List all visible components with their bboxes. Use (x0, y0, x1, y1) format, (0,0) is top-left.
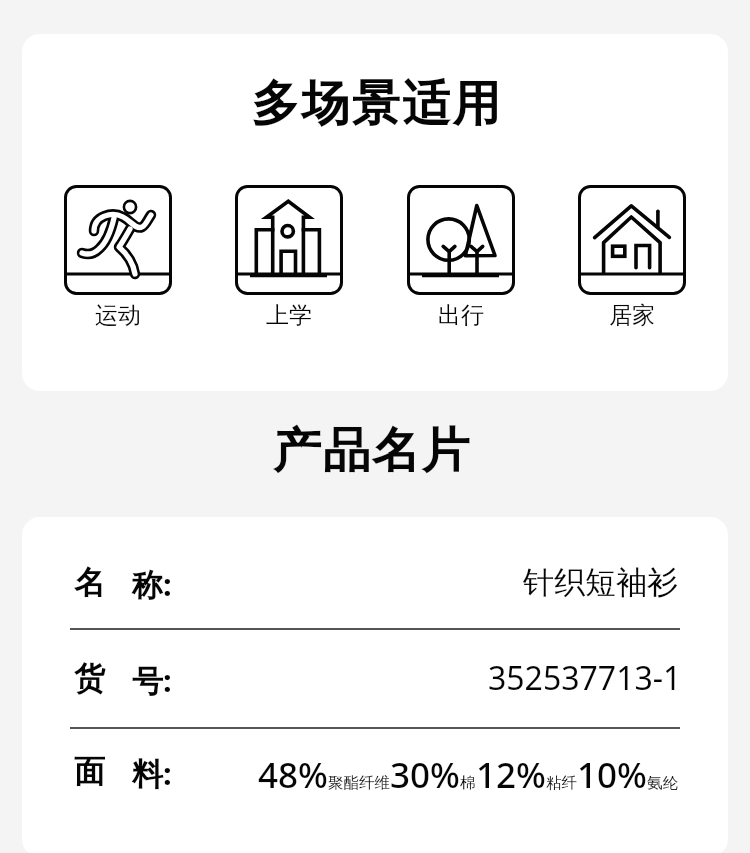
staticText: 棉 (460, 773, 476, 793)
staticText: 号: (132, 659, 172, 701)
staticText: 48% (258, 751, 328, 799)
staticText: 名 (74, 563, 105, 602)
staticText: 30% (390, 751, 460, 799)
button[interactable]: 运动 (64, 185, 172, 330)
staticText: 称: (132, 563, 172, 605)
staticText: 料: (132, 752, 172, 794)
staticText: 运动 (95, 301, 141, 330)
staticText: 针织短袖衫 (523, 563, 678, 602)
staticText: 货 (74, 659, 105, 698)
staticText: 居家 (609, 301, 655, 330)
other: 运动 (64, 185, 172, 295)
staticText: 面 (74, 752, 105, 791)
staticText: 352537713-1 (488, 656, 682, 700)
button[interactable]: 出行 (407, 185, 515, 330)
other: 居家 (578, 185, 686, 295)
button[interactable]: 居家 (578, 185, 686, 330)
staticText: 粘纤 (546, 773, 577, 793)
other: 出行 (407, 185, 515, 295)
other: 上学 (235, 185, 343, 295)
staticText: 产品名片 (0, 421, 747, 481)
staticText: 聚酯纤维 (328, 773, 390, 793)
button[interactable]: 面 (22, 749, 728, 806)
staticText: 上学 (266, 301, 312, 330)
staticText: 12% (476, 751, 546, 799)
staticText: 氨纶 (647, 773, 678, 793)
staticText: 出行 (438, 301, 484, 330)
button[interactable]: 货 (22, 658, 728, 715)
staticText: 10% (577, 751, 647, 799)
button[interactable]: 上学 (235, 185, 343, 330)
button[interactable]: 名 (22, 563, 728, 620)
staticText: 多场景适用 (24, 74, 728, 134)
